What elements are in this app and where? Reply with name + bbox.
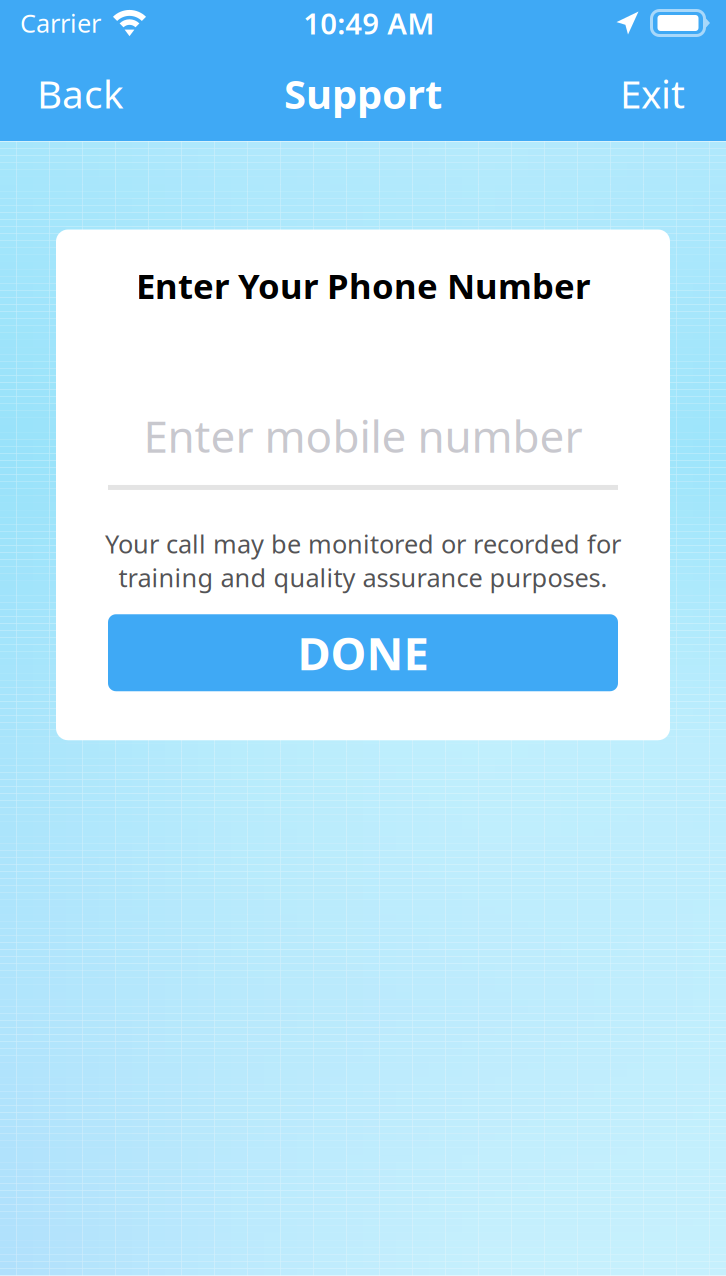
staticText: Carrier <box>20 6 101 40</box>
staticText: 10:49 AM <box>303 3 434 42</box>
staticText: Enter Your Phone Number <box>136 262 590 308</box>
staticText: Support <box>284 67 442 120</box>
staticText: training and quality assurance purposes. <box>118 561 607 594</box>
staticText: DONE <box>297 623 428 683</box>
staticText: Enter mobile number <box>143 406 582 465</box>
staticText: Back <box>37 68 124 119</box>
button[interactable]: DONE <box>108 614 618 691</box>
staticText: Your call may be monitored or recorded f… <box>105 527 621 561</box>
button[interactable]: Back <box>37 46 124 141</box>
button[interactable]: Enter mobile number <box>108 406 618 490</box>
button[interactable]: Exit <box>620 46 685 141</box>
staticText: Exit <box>620 68 685 119</box>
